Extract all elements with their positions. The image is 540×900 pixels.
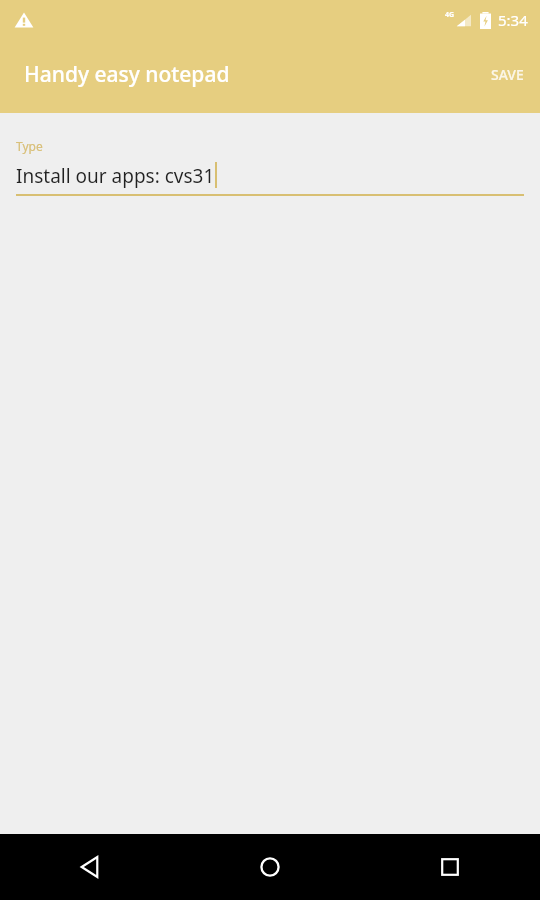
button[interactable]: Recents xyxy=(360,834,540,900)
staticText: 4G xyxy=(445,10,455,20)
staticText: Type xyxy=(16,138,43,154)
staticText: 5:34 xyxy=(498,10,528,30)
button[interactable]: Home xyxy=(180,834,360,900)
staticText: Handy easy notepad xyxy=(24,60,230,89)
staticText: SAVE xyxy=(491,65,524,84)
button[interactable]: Install our apps: cvs31 xyxy=(0,163,540,196)
button[interactable]: Back xyxy=(0,834,180,900)
staticText: Install our apps: cvs31 xyxy=(16,163,215,189)
button[interactable]: SAVE xyxy=(475,55,540,94)
